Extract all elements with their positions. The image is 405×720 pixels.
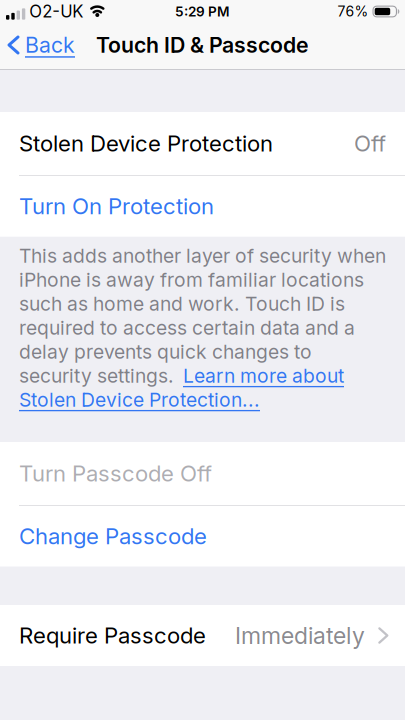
staticText: iPhone is away from familiar locations	[19, 268, 364, 291]
button[interactable]: Stolen Device Protection...	[19, 388, 260, 411]
staticText: such as home and work. Touch ID is	[19, 292, 345, 315]
staticText: 76%	[337, 3, 368, 20]
staticText: 5:29 PM	[175, 3, 230, 20]
staticText: Back	[25, 32, 75, 58]
staticText: Stolen Device Protection...	[19, 388, 260, 411]
staticText: O2-UK	[29, 1, 83, 22]
staticText: delay prevents quick changes to	[19, 340, 312, 363]
staticText: Change Passcode	[19, 523, 207, 550]
button[interactable]: Back	[0, 32, 75, 58]
staticText: Immediately	[235, 621, 365, 649]
staticText: Turn Passcode Off	[19, 460, 212, 487]
staticText: Require Passcode	[19, 622, 206, 649]
staticText: Turn On Protection	[19, 193, 214, 220]
button[interactable]: Learn more about	[183, 364, 344, 387]
button[interactable]: Turn Passcode Off	[0, 442, 405, 505]
button[interactable]: Require Passcode	[0, 605, 405, 666]
staticText: required to access certain data and a	[19, 316, 355, 339]
staticText: Learn more about	[183, 364, 344, 387]
button[interactable]: Change Passcode	[0, 506, 405, 567]
staticText: Touch ID & Passcode	[96, 32, 309, 58]
staticText: Off	[354, 130, 386, 157]
staticText: Stolen Device Protection	[19, 130, 273, 157]
staticText: This adds another layer of security when	[19, 244, 386, 267]
staticText: security settings.	[19, 364, 179, 387]
button[interactable]: Turn On Protection	[0, 176, 405, 237]
